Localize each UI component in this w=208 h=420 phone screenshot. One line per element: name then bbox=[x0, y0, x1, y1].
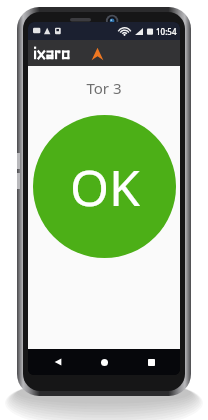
button[interactable]: Back bbox=[41, 349, 75, 375]
button[interactable]: Home bbox=[87, 349, 121, 375]
staticText: Tor 3 bbox=[86, 78, 122, 98]
staticText: OK bbox=[70, 153, 140, 221]
button[interactable]: Recent apps bbox=[134, 349, 168, 375]
button[interactable] bbox=[28, 40, 180, 66]
staticText: 10:54 bbox=[156, 26, 177, 37]
button[interactable]: OK bbox=[33, 115, 176, 258]
